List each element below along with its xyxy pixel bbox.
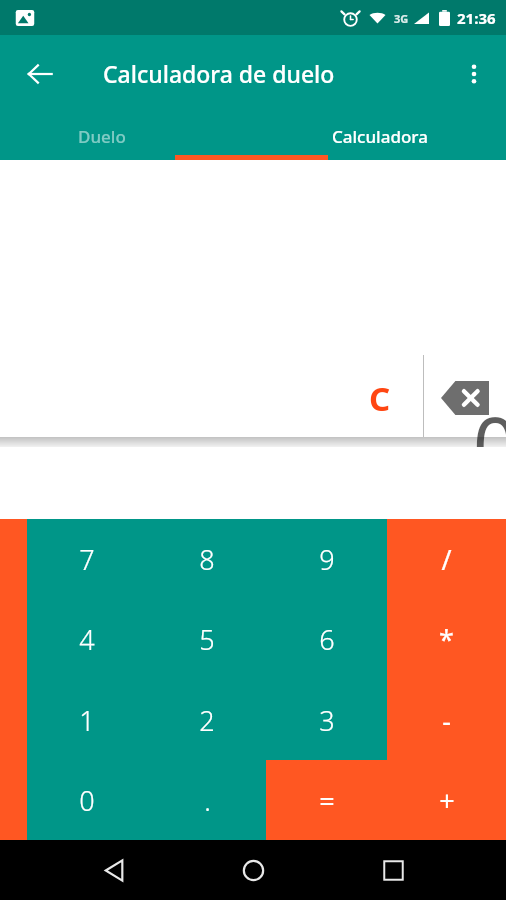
- button[interactable]: Recent apps: [367, 844, 419, 896]
- staticText: 4: [79, 621, 95, 658]
- button[interactable]: -: [387, 680, 506, 760]
- staticText: 9: [319, 541, 335, 578]
- button[interactable]: Backspace: [430, 360, 500, 436]
- button[interactable]: 3: [267, 680, 387, 760]
- staticText: *: [439, 621, 454, 658]
- button[interactable]: /: [387, 519, 506, 599]
- staticText: 8: [199, 541, 215, 578]
- staticText: .: [204, 782, 211, 819]
- button[interactable]: 8: [147, 519, 267, 599]
- staticText: C: [369, 376, 391, 421]
- staticText: 2: [199, 702, 215, 739]
- button[interactable]: Duelo: [0, 112, 253, 160]
- button[interactable]: 4: [27, 599, 147, 679]
- button[interactable]: Home: [227, 844, 279, 896]
- button[interactable]: More options: [450, 50, 498, 98]
- staticText: Calculadora: [332, 125, 428, 148]
- button[interactable]: =: [267, 760, 387, 840]
- button[interactable]: Back: [88, 844, 140, 896]
- staticText: 1: [79, 702, 95, 739]
- staticText: =: [319, 782, 335, 819]
- button[interactable]: 9: [267, 519, 387, 599]
- staticText: 7: [79, 541, 95, 578]
- button[interactable]: +: [387, 760, 506, 840]
- button[interactable]: 1: [27, 680, 147, 760]
- staticText: 0: [473, 391, 506, 497]
- button[interactable]: 5: [147, 599, 267, 679]
- button[interactable]: 2: [147, 680, 267, 760]
- button[interactable]: Back: [16, 50, 64, 98]
- button[interactable]: 6: [267, 599, 387, 679]
- button[interactable]: 0: [27, 760, 147, 840]
- staticText: Calculadora de duelo: [103, 58, 335, 89]
- staticText: 0: [79, 782, 95, 819]
- button[interactable]: *: [387, 599, 506, 679]
- staticText: Duelo: [78, 125, 126, 148]
- button[interactable]: Calculadora: [253, 112, 506, 160]
- staticText: 6: [319, 621, 335, 658]
- button[interactable]: .: [147, 760, 267, 840]
- staticText: /: [441, 541, 452, 578]
- staticText: 3G: [394, 11, 409, 26]
- staticText: 21:36: [457, 8, 496, 28]
- button[interactable]: C: [345, 360, 415, 436]
- button[interactable]: 7: [27, 519, 147, 599]
- staticText: -: [442, 702, 451, 739]
- staticText: 5: [199, 621, 215, 658]
- staticText: +: [439, 782, 455, 819]
- staticText: 3: [319, 702, 335, 739]
